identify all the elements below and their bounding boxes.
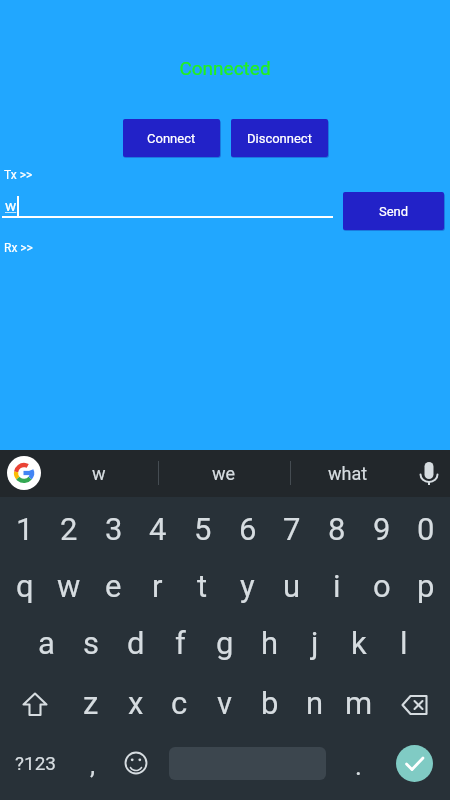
button[interactable]: Connect xyxy=(123,119,220,157)
staticText: 0 xyxy=(417,511,435,547)
staticText: 1 xyxy=(16,511,34,547)
staticText: ?123 xyxy=(15,752,57,774)
staticText: r xyxy=(152,568,163,604)
button[interactable]: w xyxy=(46,560,91,612)
button[interactable]: 9 xyxy=(359,503,404,555)
button[interactable]: b xyxy=(247,677,292,729)
staticText: o xyxy=(373,568,391,604)
button[interactable]: 2 xyxy=(46,503,91,555)
button[interactable]: 8 xyxy=(314,503,359,555)
staticText: 9 xyxy=(373,511,391,547)
button[interactable]: r xyxy=(135,560,180,612)
button[interactable]: d xyxy=(113,617,158,669)
staticText: 7 xyxy=(283,511,301,547)
button[interactable]: 7 xyxy=(269,503,314,555)
staticText: b xyxy=(261,685,279,721)
staticText: we xyxy=(212,463,236,484)
staticText: p xyxy=(417,568,435,604)
button[interactable]: o xyxy=(359,560,404,612)
button[interactable]: Backspace xyxy=(392,682,438,728)
button[interactable]: 4 xyxy=(135,503,180,555)
staticText: i xyxy=(333,568,341,604)
button[interactable]: h xyxy=(247,617,292,669)
staticText: g xyxy=(216,625,234,661)
staticText: v xyxy=(217,685,233,721)
button[interactable]: ?123 xyxy=(8,740,64,786)
staticText: Send xyxy=(379,204,409,219)
button[interactable]: Emoji xyxy=(114,741,158,785)
button[interactable]: 1 xyxy=(2,503,47,555)
button[interactable]: c xyxy=(157,677,202,729)
button[interactable]: Disconnect xyxy=(231,119,328,157)
button[interactable]: l xyxy=(381,617,426,669)
staticText: 5 xyxy=(194,511,212,547)
staticText: m xyxy=(345,685,373,721)
button[interactable]: e xyxy=(91,560,136,612)
button[interactable]: g xyxy=(202,617,247,669)
staticText: 4 xyxy=(149,511,167,547)
staticText: k xyxy=(351,625,367,661)
staticText: n xyxy=(306,685,324,721)
button[interactable]: y xyxy=(225,560,270,612)
button[interactable]: n xyxy=(292,677,337,729)
button[interactable]: Voice input xyxy=(411,455,447,491)
button[interactable]: p xyxy=(403,560,448,612)
staticText: y xyxy=(240,568,255,604)
staticText: a xyxy=(38,625,55,661)
button[interactable]: . xyxy=(336,740,381,792)
staticText: w xyxy=(57,568,81,604)
button[interactable]: Enter xyxy=(396,745,433,782)
staticText: s xyxy=(83,625,99,661)
staticText: 6 xyxy=(239,511,257,547)
staticText: . xyxy=(355,751,362,781)
staticText: Disconnect xyxy=(247,131,312,146)
button[interactable]: Send xyxy=(343,192,444,230)
button[interactable]: a xyxy=(24,617,69,669)
button[interactable]: , xyxy=(70,739,115,791)
staticText: t xyxy=(197,568,208,604)
staticText: Connect xyxy=(147,131,196,146)
button[interactable]: v xyxy=(202,677,247,729)
button[interactable]: f xyxy=(158,617,203,669)
button[interactable]: Shift xyxy=(12,682,58,728)
button[interactable]: i xyxy=(314,560,359,612)
staticText: Rx >> xyxy=(4,241,33,255)
button[interactable]: u xyxy=(269,560,314,612)
staticText: c xyxy=(171,685,188,721)
button[interactable]: s xyxy=(68,617,113,669)
button[interactable]: 0 xyxy=(403,503,448,555)
button[interactable]: 5 xyxy=(180,503,225,555)
staticText: d xyxy=(127,625,145,661)
staticText: Connected xyxy=(0,57,450,79)
button[interactable]: 3 xyxy=(91,503,136,555)
staticText: w xyxy=(5,197,17,215)
button[interactable]: q xyxy=(2,560,47,612)
staticText: x xyxy=(128,685,144,721)
button[interactable]: what xyxy=(303,450,393,497)
button[interactable]: 6 xyxy=(225,503,270,555)
staticText: what xyxy=(328,463,368,484)
button[interactable]: m xyxy=(336,677,381,729)
staticText: f xyxy=(175,625,186,661)
staticText: q xyxy=(16,568,34,604)
staticText: 3 xyxy=(105,511,123,547)
button[interactable]: w xyxy=(54,450,144,497)
button[interactable]: x xyxy=(113,677,158,729)
staticText: e xyxy=(105,568,122,604)
staticText: 2 xyxy=(60,511,78,547)
staticText: Tx >> xyxy=(4,168,33,182)
staticText: z xyxy=(83,685,99,721)
button[interactable]: t xyxy=(180,560,225,612)
staticText: j xyxy=(311,625,319,661)
staticText: l xyxy=(400,625,408,661)
button[interactable]: k xyxy=(336,617,381,669)
staticText: , xyxy=(90,750,96,780)
button[interactable]: j xyxy=(292,617,337,669)
button[interactable]: Google Assistant xyxy=(7,456,41,490)
button[interactable]: z xyxy=(68,677,113,729)
button[interactable]: we xyxy=(179,450,269,497)
staticText: 8 xyxy=(328,511,346,547)
staticText: h xyxy=(261,625,279,661)
staticText: u xyxy=(283,568,301,604)
